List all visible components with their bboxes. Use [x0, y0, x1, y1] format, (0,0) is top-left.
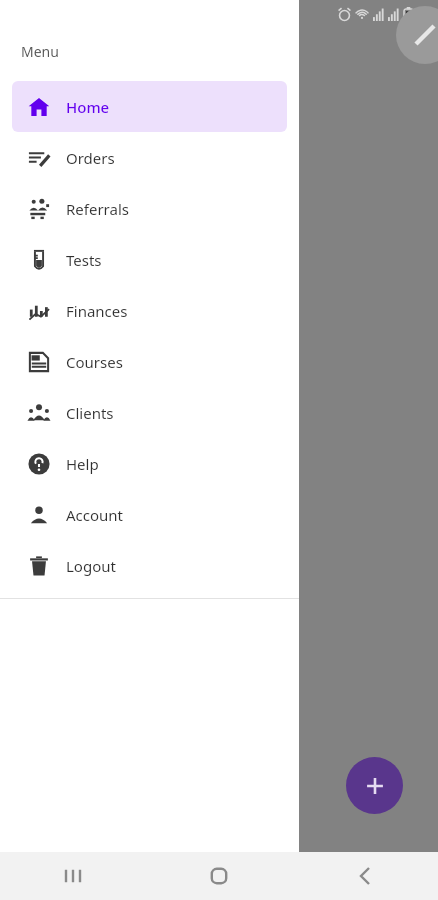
button[interactable]: Courses	[12, 336, 287, 387]
staticText: Menu	[21, 42, 59, 61]
staticText: Clients	[66, 403, 114, 423]
staticText: Finances	[66, 301, 128, 321]
button[interactable]: Help	[12, 438, 287, 489]
button[interactable]: Orders	[12, 132, 287, 183]
staticText: Home	[66, 97, 110, 117]
button[interactable]: Add	[346, 757, 403, 814]
staticText: Help	[66, 454, 99, 474]
button[interactable]: Referrals	[12, 183, 287, 234]
staticText: Account	[66, 505, 124, 525]
staticText: Logout	[66, 556, 116, 576]
button[interactable]: Edit	[396, 6, 438, 64]
button[interactable]: Home	[12, 81, 287, 132]
staticText: Referrals	[66, 199, 129, 219]
button[interactable]: Account	[12, 489, 287, 540]
staticText: Tests	[66, 250, 102, 270]
button[interactable]: Back	[292, 852, 438, 900]
button[interactable]: Finances	[12, 285, 287, 336]
button[interactable]: Recents	[0, 852, 146, 900]
staticText: Courses	[66, 352, 123, 372]
button[interactable]: Tests	[12, 234, 287, 285]
staticText: Orders	[66, 148, 115, 168]
button[interactable]: Logout	[12, 540, 287, 591]
button[interactable]: Clients	[12, 387, 287, 438]
button[interactable]: Home	[146, 852, 292, 900]
